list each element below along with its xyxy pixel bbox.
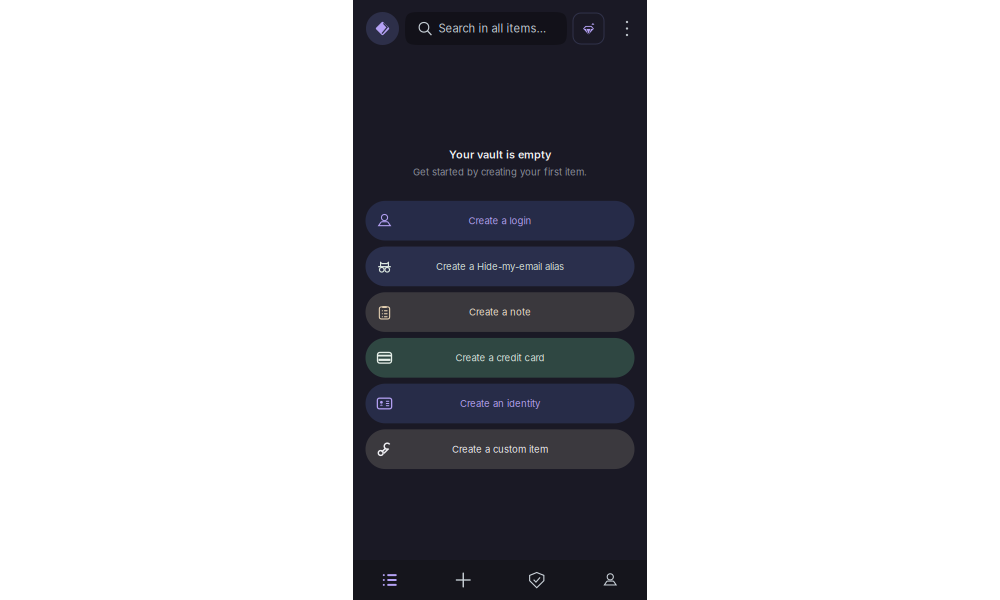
button[interactable]: Create a custom item — [365, 429, 634, 469]
button[interactable]: Create — [426, 560, 500, 600]
staticText: Your vault is empty — [449, 148, 551, 161]
button[interactable]: Search in all items… — [405, 12, 567, 45]
button[interactable]: Vault — [366, 12, 399, 45]
button[interactable]: Create a credit card — [365, 338, 634, 378]
button[interactable]: More options — [616, 12, 638, 45]
staticText: Create a login — [468, 215, 531, 226]
staticText: Create a note — [469, 306, 531, 318]
button[interactable]: Profile — [573, 560, 647, 600]
staticText: Create a credit card — [455, 352, 544, 364]
button[interactable]: Create a note — [365, 292, 634, 332]
button[interactable]: Security — [500, 560, 573, 600]
button[interactable]: Create a login — [365, 201, 634, 240]
button[interactable]: Upgrade — [573, 13, 604, 44]
staticText: Search in all items… — [438, 22, 546, 35]
button[interactable]: Create a Hide-my-email alias — [365, 246, 634, 286]
staticText: Get started by creating your first item. — [413, 166, 587, 178]
staticText: Create a custom item — [452, 443, 548, 455]
button[interactable]: Items — [353, 560, 426, 600]
staticText: Create an identity — [460, 398, 540, 409]
staticText: Create a Hide-my-email alias — [436, 261, 564, 272]
button[interactable]: Create an identity — [365, 384, 634, 423]
